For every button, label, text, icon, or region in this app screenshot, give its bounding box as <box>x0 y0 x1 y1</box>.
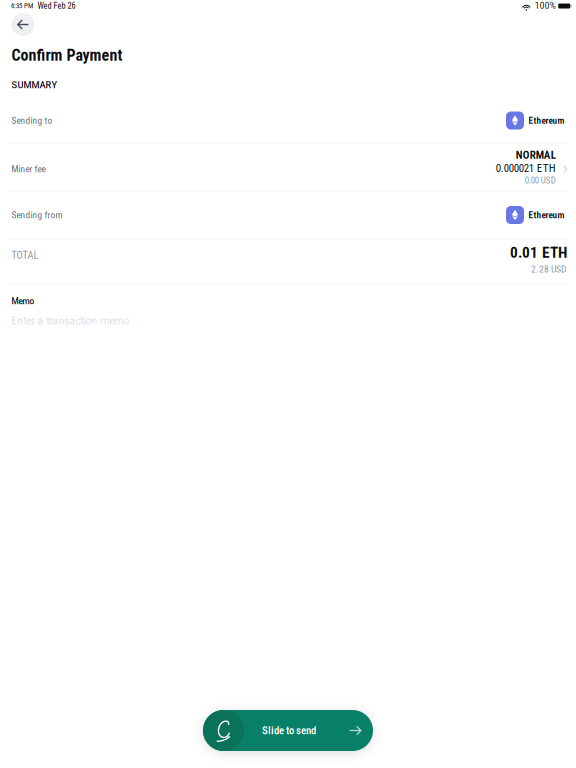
staticText: Enter a transaction memo <box>11 315 129 327</box>
staticText: Ethereum <box>528 210 564 220</box>
staticText: 6:35 PM <box>11 2 33 10</box>
staticText: 100% <box>535 1 556 11</box>
staticText: 2.28 USD <box>531 263 567 275</box>
staticText: 0.000021 ETH <box>496 162 556 175</box>
staticText: 0.01 ETH <box>510 243 567 261</box>
staticText: 0.00 USD <box>525 175 556 186</box>
button[interactable]: Miner fee <box>0 143 576 190</box>
staticText: NORMAL <box>516 148 556 161</box>
button[interactable]: Back <box>11 13 34 36</box>
staticText: TOTAL <box>11 249 38 261</box>
staticText: Wed Feb 26 <box>37 1 75 11</box>
staticText: Confirm Payment <box>11 46 122 65</box>
staticText: Miner fee <box>11 164 45 174</box>
staticText: Ethereum <box>528 115 564 126</box>
staticText: Sending from <box>11 210 62 220</box>
staticText: Sending to <box>11 115 52 126</box>
staticText: SUMMARY <box>11 80 57 91</box>
staticText: Slide to send <box>262 724 316 737</box>
button[interactable]: Slide to send <box>203 710 373 751</box>
staticText: Memo <box>11 296 34 306</box>
